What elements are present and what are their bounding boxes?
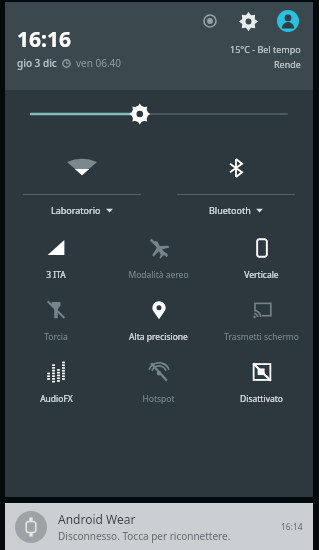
- button[interactable]: Trasmetti schermo: [210, 294, 313, 343]
- staticText: Alta precisione: [129, 331, 188, 343]
- button[interactable]: Luminosità: [5, 92, 313, 136]
- staticText: Verticale: [244, 269, 279, 281]
- button[interactable]: Verticale: [210, 232, 313, 281]
- button[interactable]: Cronologia: [199, 10, 221, 32]
- staticText: ven 06.40: [76, 56, 122, 70]
- staticText: AudioFX: [40, 393, 73, 405]
- button[interactable]: Android Wear: [5, 503, 313, 550]
- button[interactable]: Bluetooth: [159, 146, 313, 216]
- button[interactable]: Alta precisione: [107, 294, 210, 343]
- staticText: 16:16: [17, 25, 71, 54]
- staticText: Disattivato: [240, 393, 283, 405]
- staticText: Trasmetti schermo: [224, 331, 299, 343]
- staticText: Disconnesso. Tocca per riconnettere.: [58, 529, 231, 543]
- button[interactable]: Hotspot: [107, 356, 210, 405]
- staticText: Torcia: [44, 331, 68, 343]
- button[interactable]: Disattivato: [210, 356, 313, 405]
- button[interactable]: 15°C - Bel tempo: [230, 43, 301, 70]
- button[interactable]: Utente: [275, 8, 301, 34]
- staticText: Rende: [274, 58, 301, 70]
- staticText: 16:14: [281, 521, 303, 533]
- button[interactable]: Torcia: [5, 294, 107, 343]
- staticText: Android Wear: [58, 511, 136, 527]
- button[interactable]: AudioFX: [5, 356, 107, 405]
- button[interactable]: 3 ITA: [5, 232, 107, 281]
- button[interactable]: Laboratorio: [5, 146, 159, 216]
- staticText: 3 ITA: [46, 269, 66, 281]
- button[interactable]: 16:16: [17, 25, 122, 70]
- staticText: 15°C - Bel tempo: [230, 43, 301, 55]
- staticText: Bluetooth: [209, 204, 251, 216]
- staticText: Hotspot: [142, 393, 175, 405]
- button[interactable]: Modalità aereo: [107, 232, 210, 281]
- button[interactable]: Impostazioni: [235, 8, 261, 34]
- staticText: gio 3 dic: [17, 56, 57, 70]
- staticText: Modalità aereo: [128, 269, 189, 281]
- staticText: Laboratorio: [51, 204, 101, 216]
